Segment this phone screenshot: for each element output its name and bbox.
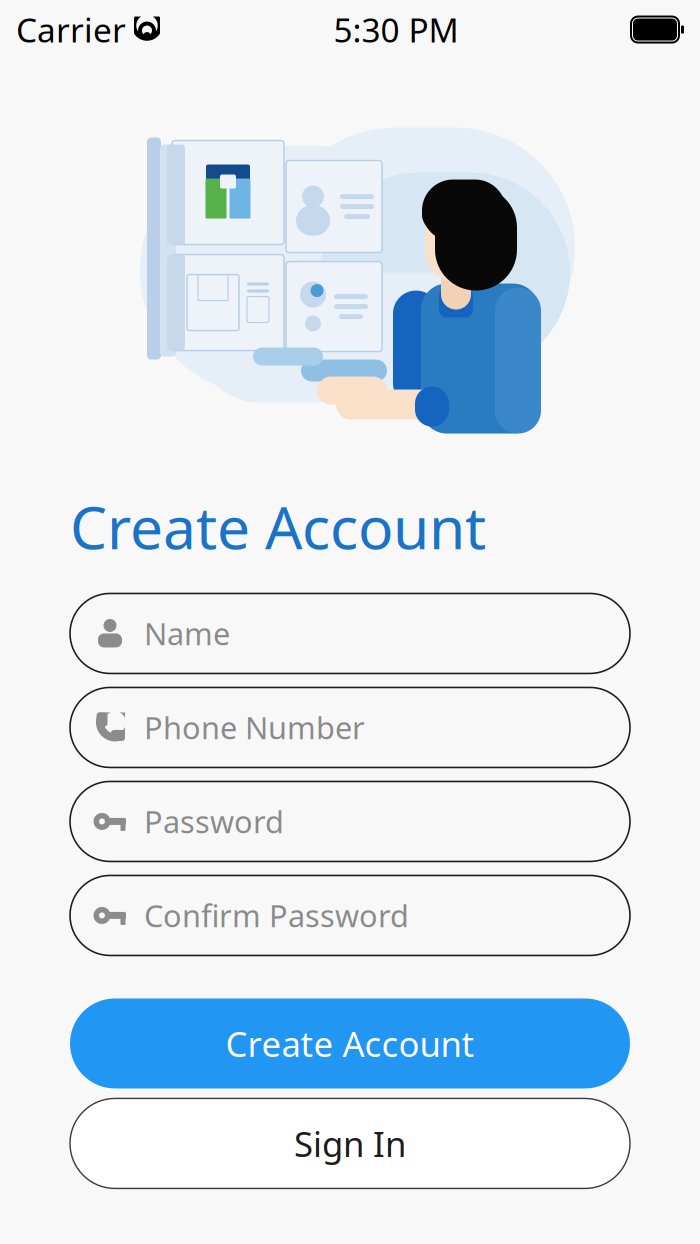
button[interactable]: Create Account bbox=[70, 998, 630, 1088]
staticText: 5:30 PM bbox=[333, 7, 458, 52]
staticText: Create Account bbox=[70, 487, 486, 565]
staticText: Carrier bbox=[16, 7, 126, 52]
staticText: Confirm Password bbox=[144, 895, 409, 936]
staticText: Sign In bbox=[294, 1120, 406, 1166]
staticText: Create Account bbox=[225, 1020, 474, 1066]
staticText: Name bbox=[144, 613, 230, 654]
button[interactable]: Confirm Password bbox=[70, 875, 630, 955]
staticText: Phone Number bbox=[144, 707, 365, 748]
button[interactable]: Sign In bbox=[70, 1098, 630, 1188]
staticText: Password bbox=[144, 801, 284, 842]
button[interactable]: Password bbox=[70, 781, 630, 861]
button[interactable]: Phone Number bbox=[70, 687, 630, 767]
button[interactable]: Name bbox=[70, 593, 630, 673]
